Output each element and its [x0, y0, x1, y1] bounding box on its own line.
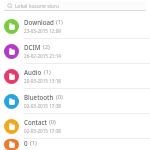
other: Contact	[4, 119, 19, 134]
button[interactable]: 0	[0, 139, 150, 150]
staticText: 0	[24, 139, 28, 147]
staticText: (0)	[49, 118, 56, 126]
staticText: DCIM	[24, 43, 41, 51]
staticText: 23-03-2015 12:09	[24, 28, 61, 34]
staticText: 02-03-2015 17:38	[24, 103, 61, 109]
staticText: Audio	[24, 68, 42, 76]
staticText: Contact	[24, 118, 47, 126]
other: 0	[4, 139, 19, 150]
other: Download	[4, 19, 19, 34]
button[interactable]: DCIM	[0, 39, 150, 63]
button[interactable]: Bluetooth	[0, 89, 150, 113]
other: Bluetooth	[4, 94, 19, 109]
staticText: (1)	[56, 18, 63, 26]
staticText: Bluetooth	[24, 93, 54, 101]
button[interactable]: Download	[0, 14, 150, 38]
staticText: Download	[24, 18, 54, 26]
staticText: (1)	[44, 68, 51, 76]
button[interactable]: Lokal kucune siuru	[4, 1, 146, 11]
staticText: 02-03-2015 17:38	[24, 128, 61, 134]
other: Audio	[4, 69, 19, 84]
button[interactable]: Contact	[0, 114, 150, 138]
staticText: Lokal kucune siuru	[15, 3, 60, 10]
staticText: (1)	[30, 139, 37, 147]
staticText: (2)	[43, 43, 50, 51]
staticText: 20-03-2015 13:18	[24, 78, 61, 84]
staticText: (0)	[56, 93, 63, 101]
other: DCIM	[4, 44, 19, 59]
staticText: 26-02-2015 21:14	[24, 53, 61, 59]
button[interactable]: Audio	[0, 64, 150, 88]
